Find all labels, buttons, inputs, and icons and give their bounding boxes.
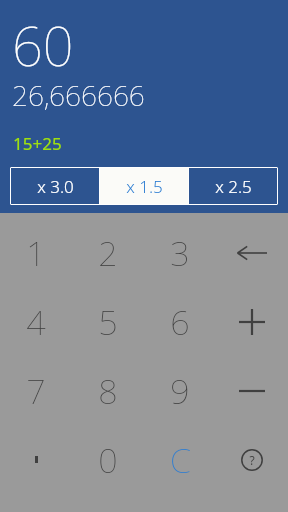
button[interactable]: Decimal separator bbox=[0, 425, 72, 494]
button[interactable]: x 3.0 bbox=[11, 168, 99, 204]
staticText: 7 bbox=[26, 368, 46, 414]
button[interactable]: 1 bbox=[0, 219, 72, 287]
button[interactable]: Plus bbox=[216, 287, 288, 356]
button[interactable]: Backspace bbox=[216, 219, 288, 287]
staticText: ? bbox=[249, 452, 255, 468]
staticText: 4 bbox=[26, 299, 46, 345]
button[interactable]: Help bbox=[216, 425, 288, 494]
staticText: C bbox=[170, 437, 191, 483]
button[interactable]: Minus bbox=[216, 356, 288, 425]
button[interactable]: 9 bbox=[144, 356, 216, 425]
staticText: 26,666666 bbox=[12, 76, 145, 114]
button[interactable]: 7 bbox=[0, 356, 72, 425]
button[interactable]: 3 bbox=[144, 219, 216, 287]
button[interactable]: 0 bbox=[72, 425, 144, 494]
staticText: 8 bbox=[98, 368, 118, 414]
button[interactable]: x 1.5 bbox=[100, 168, 188, 204]
button[interactable]: 5 bbox=[72, 287, 144, 356]
staticText: 0 bbox=[98, 437, 118, 483]
button[interactable]: 4 bbox=[0, 287, 72, 356]
staticText: x 3.0 bbox=[37, 175, 74, 198]
staticText: 60 bbox=[12, 8, 74, 82]
staticText: 1 bbox=[26, 230, 46, 276]
button[interactable]: 6 bbox=[144, 287, 216, 356]
button[interactable]: 8 bbox=[72, 356, 144, 425]
staticText: 15+25 bbox=[13, 132, 62, 155]
staticText: x 2.5 bbox=[215, 175, 252, 198]
staticText: 6 bbox=[170, 299, 190, 345]
staticText: x 1.5 bbox=[126, 175, 163, 198]
button[interactable]: x 2.5 bbox=[189, 168, 277, 204]
button[interactable]: C bbox=[144, 425, 216, 494]
staticText: 9 bbox=[170, 368, 190, 414]
button[interactable]: 2 bbox=[72, 219, 144, 287]
staticText: 3 bbox=[170, 230, 190, 276]
staticText: 2 bbox=[98, 230, 118, 276]
staticText: 5 bbox=[98, 299, 118, 345]
